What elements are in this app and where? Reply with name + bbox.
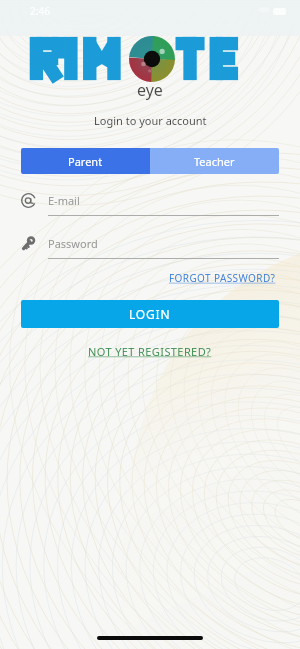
button[interactable]: NOT YET REGISTERED? xyxy=(86,341,214,362)
staticText: Parent xyxy=(68,154,103,169)
staticText: eye xyxy=(137,79,163,101)
staticText: E-mail xyxy=(48,193,80,208)
staticText: Teacher xyxy=(194,154,235,169)
staticText: 2:46 xyxy=(30,4,50,18)
button[interactable]: Parent xyxy=(21,148,150,174)
staticText: Login to your account xyxy=(94,113,207,128)
button[interactable]: FORGOT PASSWORD? xyxy=(167,268,278,288)
staticText: Password xyxy=(48,236,98,251)
other: Password xyxy=(21,236,36,251)
button[interactable]: LOGIN xyxy=(21,300,279,328)
staticText: LOGIN xyxy=(129,306,171,322)
other: E-mail xyxy=(21,193,36,208)
button[interactable]: E-mail xyxy=(21,193,279,216)
staticText: NOT YET REGISTERED? xyxy=(88,344,212,359)
staticText: FORGOT PASSWORD? xyxy=(169,271,276,285)
button[interactable]: Password xyxy=(21,236,279,259)
button[interactable]: Teacher xyxy=(150,148,279,174)
